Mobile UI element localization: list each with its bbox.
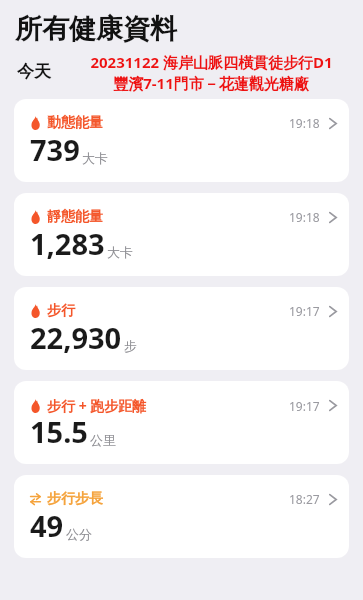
staticText: 今天 [17, 61, 51, 82]
staticText: 19:17 [289, 303, 320, 319]
staticText: 動態能量 [47, 114, 103, 132]
staticText: 公分 [66, 526, 92, 542]
button[interactable]: 步行步長 [14, 475, 349, 558]
staticText: 步行步長 [47, 490, 103, 508]
staticText: 739 [30, 130, 80, 169]
staticText: 公里 [90, 432, 116, 448]
other: Show details [329, 117, 337, 130]
staticText: 19:18 [289, 115, 320, 131]
staticText: 20231122 海岸山脈四橫貫徒步行D1 [90, 52, 333, 72]
button[interactable]: 靜態能量 [14, 193, 349, 276]
button[interactable]: 步行 [14, 287, 349, 370]
other: Show details [329, 211, 337, 224]
staticText: 所有健康資料 [15, 12, 177, 46]
staticText: 靜態能量 [47, 208, 103, 226]
staticText: 49 [30, 506, 64, 545]
staticText: 大卡 [107, 244, 133, 260]
staticText: 15.5 [30, 412, 88, 451]
other: Show details [329, 399, 337, 412]
button[interactable]: 動態能量 [14, 99, 349, 182]
other: Show details [329, 493, 337, 506]
staticText: 18:27 [289, 491, 320, 507]
staticText: 1,283 [30, 224, 105, 263]
staticText: 大卡 [82, 150, 108, 166]
staticText: 19:18 [289, 209, 320, 225]
other: Show details [329, 305, 337, 318]
staticText: 步行 [47, 302, 75, 320]
button[interactable]: 步行 + 跑步距離 [14, 381, 349, 464]
staticText: 豐濱7-11門市－花蓮觀光糖廠 [113, 73, 309, 93]
staticText: 步行 + 跑步距離 [47, 396, 147, 415]
staticText: 19:17 [289, 398, 320, 414]
staticText: 22,930 [30, 318, 122, 357]
staticText: 步 [124, 338, 137, 354]
